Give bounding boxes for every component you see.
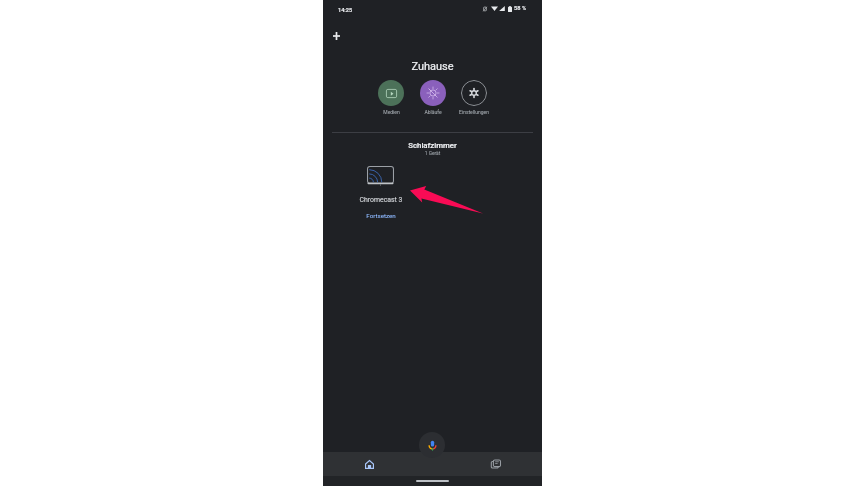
button[interactable]: Einstellungen — [449, 80, 499, 115]
staticText: Fortsetzen — [331, 212, 431, 219]
button[interactable]: Medien — [366, 80, 416, 115]
button[interactable]: Abläufe — [408, 80, 458, 115]
button[interactable]: Google Assistant — [419, 432, 445, 458]
staticText: Schlafzimmer — [323, 141, 542, 150]
staticText: Einstellungen — [459, 109, 489, 115]
button[interactable]: Feed — [484, 452, 508, 476]
staticText: Medien — [383, 109, 400, 115]
staticText: Zuhause — [323, 60, 542, 73]
button[interactable]: Fortsetzen — [331, 212, 431, 219]
staticText: 1 Gerät — [323, 151, 542, 157]
button[interactable]: Add — [328, 28, 344, 44]
staticText: Abläufe — [424, 109, 442, 115]
button[interactable]: Chromecast 3 — [367, 166, 394, 186]
staticText: 14:25 — [338, 7, 353, 14]
button[interactable]: Home — [357, 452, 381, 476]
staticText: 58 % — [514, 5, 527, 12]
staticText: Chromecast 3 — [331, 196, 431, 204]
